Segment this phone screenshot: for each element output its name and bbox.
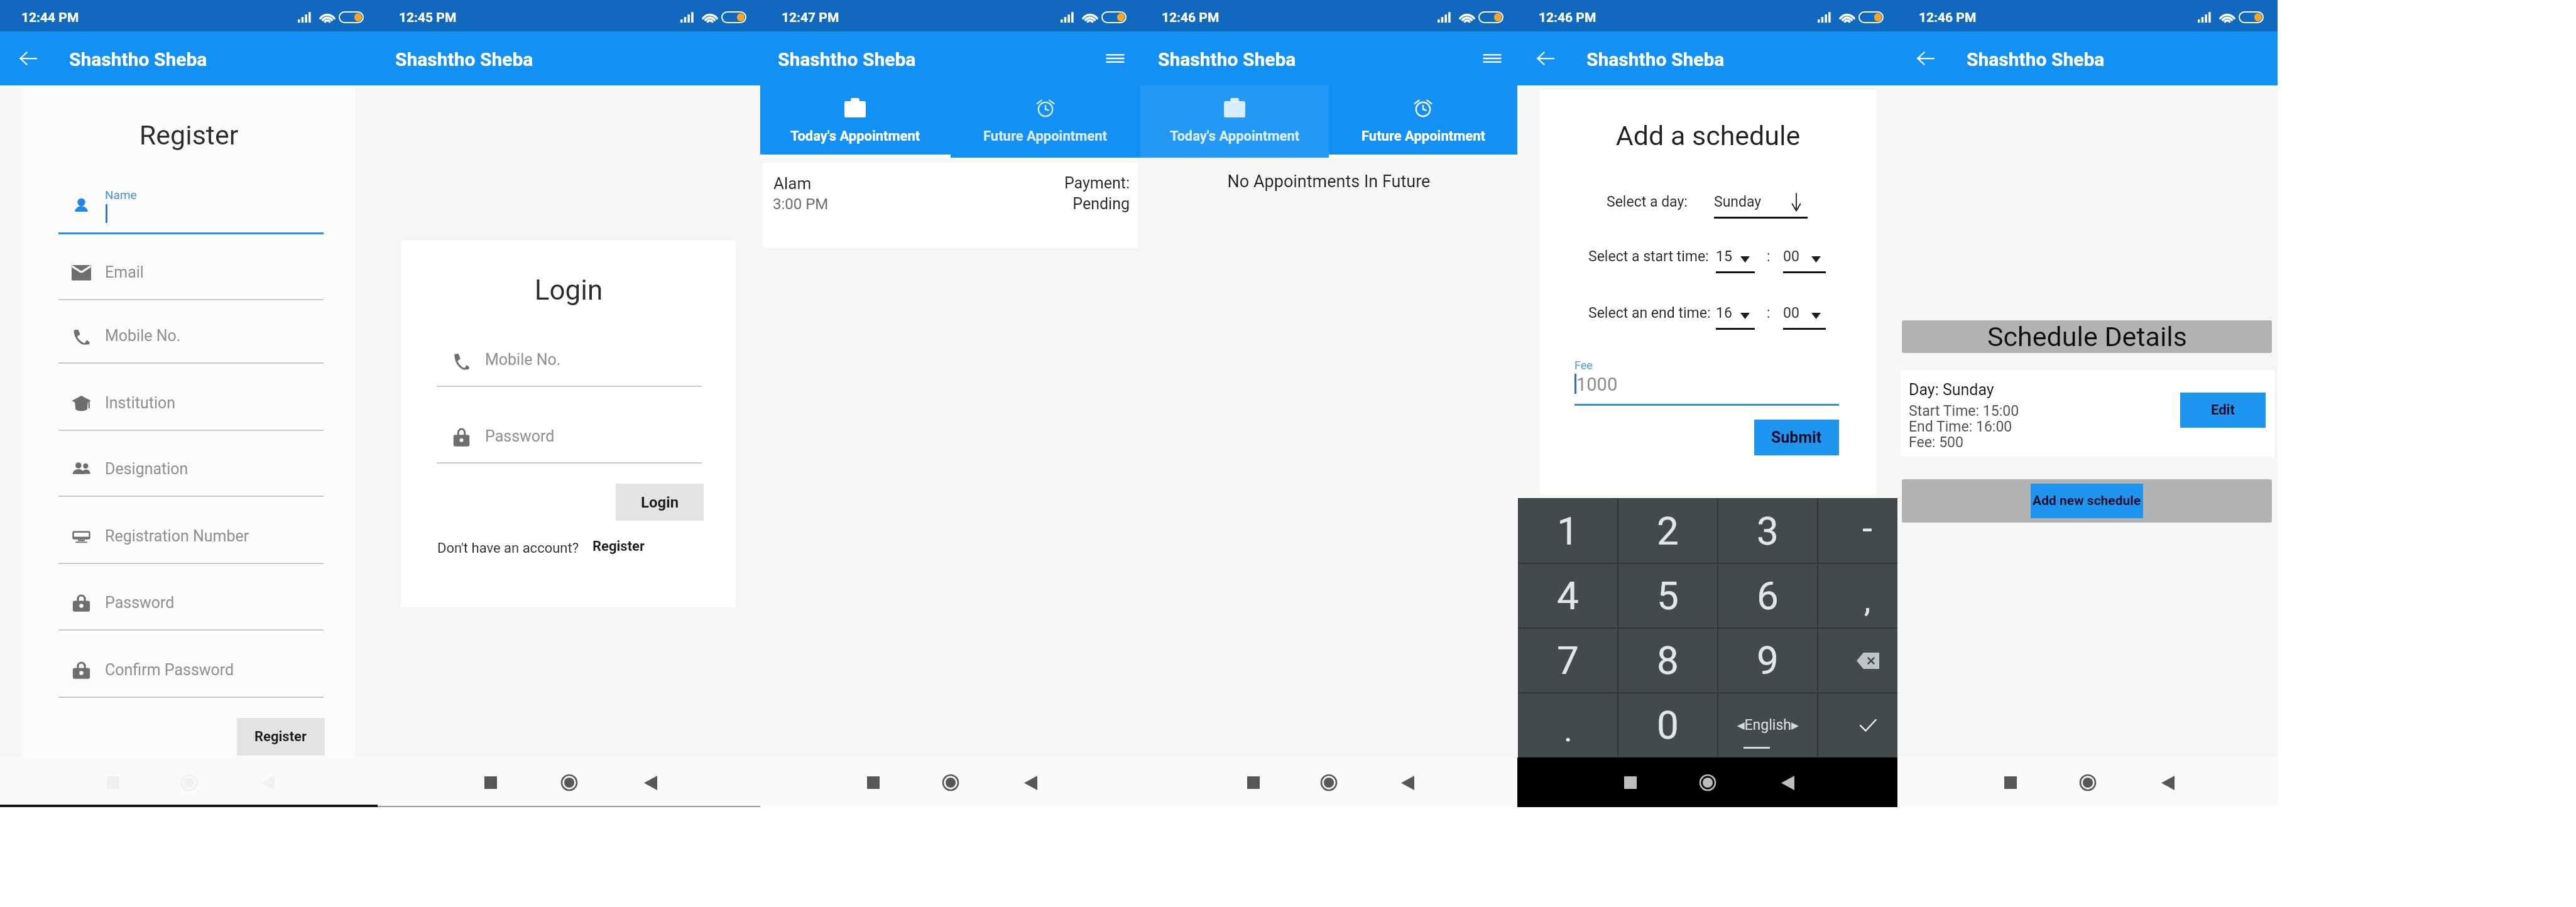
- staticText: 1: [1557, 508, 1579, 554]
- staticText: -: [1862, 507, 1873, 550]
- other: Backspace: [1857, 653, 1879, 669]
- staticText: 4: [1557, 573, 1579, 619]
- button[interactable]: Mobile No.: [58, 321, 324, 362]
- other: Open day dropdown: [1789, 192, 1804, 212]
- button[interactable]: Recents: [1995, 767, 2026, 798]
- button[interactable]: 00: [1783, 248, 1826, 276]
- staticText: 1000: [1576, 374, 1618, 395]
- button[interactable]: Back: [1772, 767, 1803, 798]
- button[interactable]: ◂English▸: [1718, 693, 1817, 757]
- button[interactable]: Edit: [2180, 393, 2266, 428]
- staticText: Register: [254, 729, 307, 745]
- button[interactable]: 8: [1618, 629, 1717, 692]
- staticText: Login: [641, 494, 679, 511]
- staticText: Alam: [773, 174, 812, 193]
- staticText: Fee: 500: [1909, 434, 1963, 451]
- button[interactable]: Menu: [1098, 41, 1133, 76]
- button[interactable]: Recents: [1615, 767, 1646, 798]
- staticText: :: [1767, 305, 1771, 322]
- button[interactable]: Home: [935, 767, 966, 798]
- staticText: Shashtho Sheba: [778, 48, 916, 70]
- button[interactable]: 0: [1618, 693, 1717, 757]
- staticText: 00: [1783, 305, 1799, 322]
- staticText: Select a start time:: [1588, 248, 1709, 265]
- button[interactable]: Register: [592, 538, 645, 555]
- button[interactable]: Recents: [97, 767, 129, 798]
- staticText: 16: [1716, 305, 1732, 322]
- button[interactable]: Alarm: [950, 85, 1140, 158]
- staticText: 12:46 PM: [1162, 10, 1220, 26]
- button[interactable]: Back: [2152, 767, 2183, 798]
- button[interactable]: Registration Number: [58, 521, 324, 563]
- staticText: 12:46 PM: [1919, 10, 1977, 26]
- other: Alarm: [1035, 98, 1056, 117]
- staticText: Designation: [105, 460, 188, 478]
- button[interactable]: Mobile No.: [437, 342, 702, 386]
- staticText: Schedule Details: [1987, 321, 2187, 352]
- staticText: Password: [105, 594, 175, 612]
- button[interactable]: Login: [616, 484, 704, 521]
- button[interactable]: 1: [1519, 499, 1617, 563]
- button[interactable]: 3: [1718, 499, 1817, 563]
- button[interactable]: 00: [1783, 305, 1826, 333]
- button[interactable]: .: [1519, 693, 1617, 757]
- staticText: Shashtho Sheba: [69, 48, 207, 70]
- staticText: Add a schedule: [1540, 120, 1876, 151]
- button[interactable]: Register: [237, 718, 325, 756]
- button[interactable]: -: [1818, 499, 1897, 563]
- button[interactable]: Home: [1692, 767, 1723, 798]
- button[interactable]: Email: [58, 258, 324, 299]
- button[interactable]: Home: [173, 767, 205, 798]
- button[interactable]: Password: [437, 418, 702, 462]
- button[interactable]: Back: [1392, 767, 1423, 798]
- button[interactable]: Back: [1908, 41, 1943, 76]
- button[interactable]: Password: [58, 588, 324, 629]
- button[interactable]: 2: [1618, 499, 1717, 563]
- button[interactable]: Alarm: [1329, 85, 1517, 158]
- button[interactable]: Institution: [58, 388, 324, 430]
- button[interactable]: Recents: [475, 767, 506, 798]
- button[interactable]: 4: [1519, 564, 1617, 627]
- button[interactable]: Back: [1528, 41, 1563, 76]
- staticText: Day: Sunday: [1909, 381, 1994, 399]
- button[interactable]: 9: [1718, 629, 1817, 692]
- button[interactable]: Name: [58, 191, 324, 232]
- button[interactable]: 7: [1519, 629, 1617, 692]
- staticText: Submit: [1771, 428, 1822, 447]
- staticText: Institution: [105, 394, 176, 412]
- button[interactable]: Recents: [1238, 767, 1269, 798]
- button[interactable]: Submit: [1754, 420, 1839, 455]
- button[interactable]: ,: [1818, 564, 1897, 627]
- staticText: Login: [401, 274, 736, 307]
- button[interactable]: Back: [635, 767, 666, 798]
- button[interactable]: Home: [2072, 767, 2104, 798]
- staticText: Shashtho Sheba: [1967, 48, 2105, 70]
- staticText: ,: [1864, 582, 1871, 620]
- staticText: Mobile No.: [485, 350, 561, 369]
- staticText: Today's Appointment: [790, 128, 920, 144]
- button[interactable]: 5: [1618, 564, 1717, 627]
- button[interactable]: Designation: [58, 454, 324, 496]
- button[interactable]: Briefcase: [1140, 85, 1329, 158]
- button[interactable]: Briefcase: [760, 85, 950, 158]
- button[interactable]: Backspace: [1818, 629, 1897, 692]
- button[interactable]: Home: [554, 767, 585, 798]
- button[interactable]: 16: [1716, 305, 1755, 333]
- button[interactable]: Menu: [1475, 41, 1510, 76]
- button[interactable]: Back: [1015, 767, 1046, 798]
- staticText: Sunday: [1714, 193, 1762, 210]
- staticText: Select a day:: [1607, 193, 1688, 210]
- staticText: 7: [1557, 638, 1579, 683]
- button[interactable]: Alam: [763, 163, 1138, 247]
- button[interactable]: Back: [11, 41, 46, 76]
- button[interactable]: 15: [1716, 248, 1755, 276]
- button[interactable]: Home: [1313, 767, 1345, 798]
- button[interactable]: Done: [1818, 693, 1897, 757]
- staticText: Shashtho Sheba: [1158, 48, 1296, 70]
- button[interactable]: Add new schedule: [1902, 479, 2272, 523]
- button[interactable]: Confirm Password: [58, 655, 324, 697]
- button[interactable]: 6: [1718, 564, 1817, 627]
- button[interactable]: Recents: [858, 767, 889, 798]
